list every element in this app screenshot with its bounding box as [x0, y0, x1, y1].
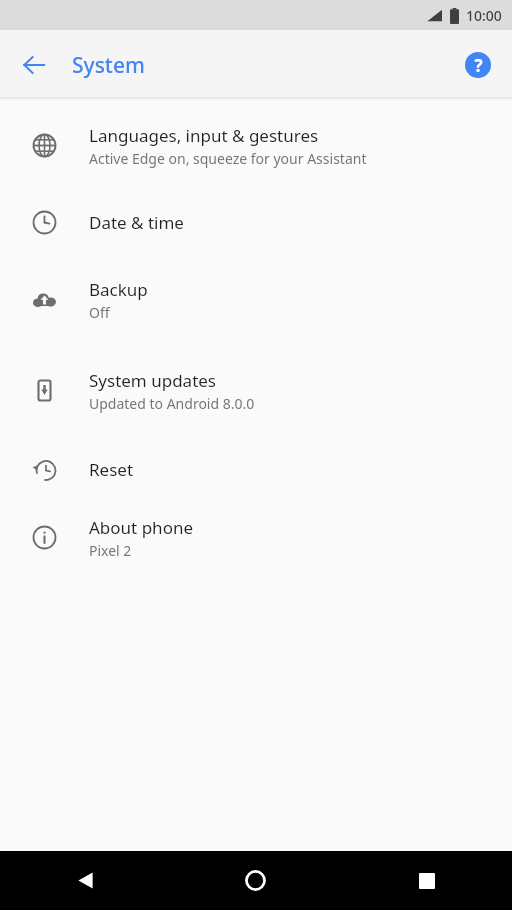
- staticText: Off: [89, 303, 110, 322]
- staticText: Date & time: [89, 211, 184, 234]
- button[interactable]: About phone: [0, 506, 512, 569]
- staticText: ?: [474, 54, 483, 77]
- staticText: Pixel 2: [89, 541, 132, 560]
- staticText: Languages, input & gestures: [89, 124, 319, 147]
- button[interactable]: System updates: [0, 359, 512, 422]
- button[interactable]: Languages, input & gestures: [0, 114, 512, 177]
- staticText: About phone: [89, 516, 194, 539]
- button[interactable]: Recent apps: [341, 851, 512, 910]
- staticText: System updates: [89, 369, 217, 392]
- staticText: Active Edge on, squeeze for your Assista…: [89, 149, 367, 168]
- button[interactable]: Back: [0, 851, 170, 910]
- staticText: System: [72, 51, 145, 80]
- button[interactable]: Backup: [0, 268, 512, 331]
- staticText: Updated to Android 8.0.0: [89, 394, 255, 413]
- button[interactable]: Back: [10, 41, 58, 89]
- button[interactable]: Home: [170, 851, 341, 910]
- staticText: Backup: [89, 278, 148, 301]
- staticText: 10:00: [466, 6, 502, 25]
- button[interactable]: Date & time: [0, 177, 512, 268]
- staticText: Reset: [89, 458, 134, 481]
- button[interactable]: Help: [454, 41, 502, 89]
- button[interactable]: Reset: [0, 438, 512, 501]
